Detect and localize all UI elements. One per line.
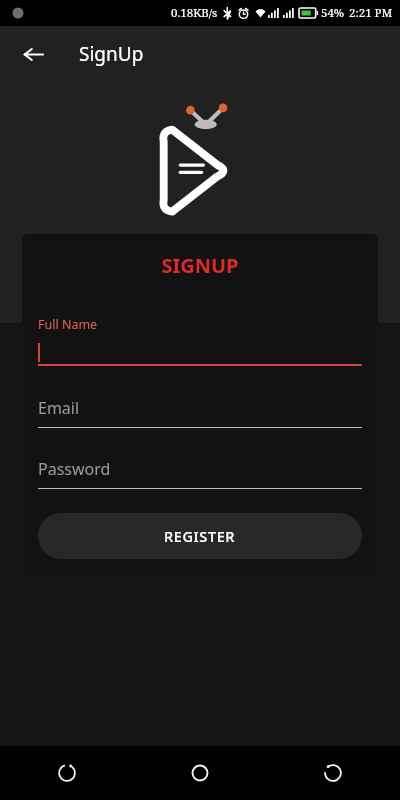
staticText: REGISTER (164, 526, 236, 546)
staticText: Full Name (38, 316, 98, 333)
staticText: Email (38, 397, 80, 419)
button[interactable]: Back (14, 35, 52, 73)
staticText: Password (38, 458, 111, 480)
button[interactable]: Recents (41, 747, 93, 799)
button[interactable]: Email (38, 397, 362, 428)
staticText: SIGNUP (161, 252, 239, 279)
button[interactable]: REGISTER (38, 513, 362, 559)
staticText: 2:21 PM (349, 5, 393, 21)
staticText: 54% (321, 5, 345, 21)
button[interactable]: Full Name (38, 316, 362, 366)
button[interactable]: Back (307, 747, 359, 799)
staticText: 0.18KB/s (171, 5, 218, 21)
button[interactable]: Password (38, 458, 362, 489)
staticText: SignUp (79, 41, 144, 67)
button[interactable]: Home (174, 747, 226, 799)
